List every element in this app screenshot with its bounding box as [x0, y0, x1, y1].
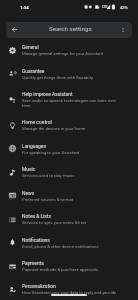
staticText: How Assistant uses your data to reply an…: [22, 290, 117, 295]
staticText: Email, phone & other device notification…: [22, 244, 99, 249]
staticText: Manage general settings for your Assista…: [22, 51, 104, 56]
button[interactable]: General: [0, 38, 138, 62]
staticText: News: [22, 190, 35, 196]
staticText: 1:34: [20, 5, 29, 10]
staticText: Payments: [22, 260, 44, 266]
staticText: Payment methods & purchase approvals: [22, 267, 99, 272]
staticText: Quickly get things done with Guaranty: [22, 75, 94, 80]
staticText: For speaking to your Assistant: [22, 150, 80, 155]
staticText: Music: [22, 166, 36, 172]
staticText: General: [22, 44, 39, 50]
staticText: Notes & Lists: [22, 213, 51, 219]
button[interactable]: Notifications: [0, 231, 138, 254]
button[interactable]: Back: [6, 22, 23, 38]
button[interactable]: Guarantee: [0, 62, 138, 85]
staticText: Search settings: [49, 25, 92, 32]
staticText: LTE: [102, 5, 108, 9]
staticText: Services used to play music: [22, 173, 75, 178]
button[interactable]: Personalization: [0, 278, 138, 300]
staticText: Manage the devices in your home: [22, 126, 86, 131]
button[interactable]: Music: [0, 160, 138, 184]
staticText: Notifications: [22, 237, 50, 243]
staticText: Guarantee: [22, 68, 45, 74]
button[interactable]: More options: [116, 22, 132, 38]
button[interactable]: Payments: [0, 254, 138, 278]
staticText: Help improve Assistant: [22, 91, 73, 97]
staticText: Home control: [22, 119, 52, 125]
button[interactable]: Help improve Assistant: [0, 85, 138, 113]
staticText: Services to sync your notes & lists: [22, 220, 87, 225]
button[interactable]: Languages: [0, 137, 138, 160]
button[interactable]: Home control: [0, 113, 138, 137]
button[interactable]: Notes & Lists: [0, 207, 138, 231]
staticText: Personalization: [22, 283, 56, 289]
staticText: 42%: [120, 5, 128, 10]
staticText: Preferred sources & format: [22, 197, 74, 202]
staticText: Save audio so speech technologies can le…: [22, 98, 116, 108]
staticText: Languages: [22, 143, 46, 149]
button[interactable]: News: [0, 184, 138, 207]
